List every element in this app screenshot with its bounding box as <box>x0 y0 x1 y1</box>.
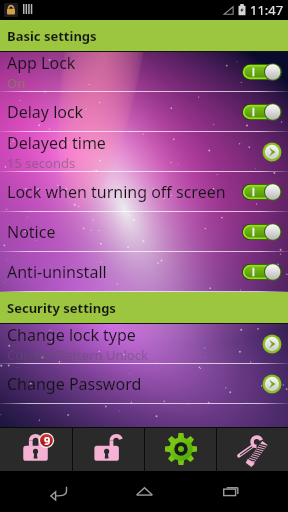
staticText: Anti-uninstall <box>7 261 107 283</box>
staticText: Change Password <box>7 373 142 395</box>
staticText: Current:Pattern Unlock <box>7 346 148 363</box>
button[interactable]: Toggle <box>242 224 282 240</box>
button[interactable]: Toggle <box>242 104 282 120</box>
button[interactable]: Unlocked apps <box>73 428 144 471</box>
staticText: On <box>7 74 26 91</box>
button[interactable]: Lock when turning off screen <box>0 172 288 211</box>
staticText: App Lock <box>7 52 76 74</box>
button[interactable]: Delay lock <box>0 92 288 131</box>
staticText: 9 <box>44 433 51 448</box>
button[interactable]: Recents <box>202 471 258 512</box>
button[interactable]: Home <box>116 471 172 512</box>
button[interactable]: Delayed time <box>0 132 288 171</box>
button[interactable]: Locked apps <box>0 428 72 471</box>
button[interactable]: Change lock type <box>0 324 288 363</box>
staticText: Delayed time <box>7 132 106 154</box>
staticText: Change lock type <box>7 324 136 346</box>
button[interactable]: Anti-uninstall <box>0 252 288 291</box>
button[interactable]: Back <box>30 471 86 512</box>
button[interactable]: Open <box>262 142 282 162</box>
button[interactable]: Open <box>262 334 282 354</box>
button[interactable]: Notice <box>0 212 288 251</box>
button[interactable]: App Lock <box>0 52 288 91</box>
staticText: Security settings <box>7 299 116 317</box>
button[interactable]: Tools <box>217 428 288 471</box>
staticText: Basic settings <box>7 27 97 45</box>
button[interactable]: Settings <box>145 428 216 471</box>
button[interactable]: Toggle <box>242 184 282 200</box>
button[interactable]: Change Password <box>0 364 288 403</box>
staticText: 15 seconds <box>7 154 76 171</box>
staticText: Notice <box>7 221 56 243</box>
staticText: Delay lock <box>7 101 84 123</box>
button[interactable]: Toggle <box>242 64 282 80</box>
button[interactable]: Open <box>262 374 282 394</box>
staticText: 11:47 <box>250 1 284 19</box>
button[interactable]: Toggle <box>242 264 282 280</box>
staticText: Lock when turning off screen <box>7 181 226 203</box>
